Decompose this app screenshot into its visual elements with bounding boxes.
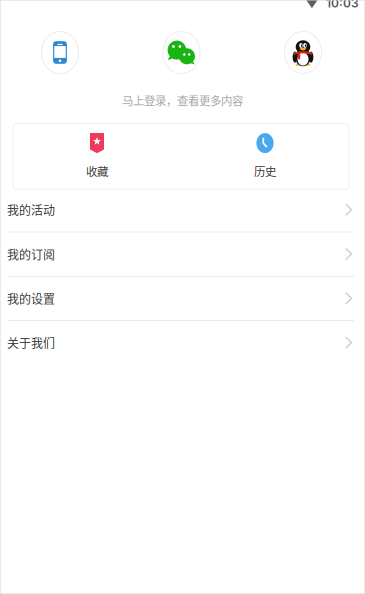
button[interactable]: 手机登录 (41, 31, 79, 74)
button[interactable]: 我的订阅 (0, 232, 365, 277)
staticText: 马上登录，查看更多内容 (122, 92, 243, 109)
button[interactable]: QQ登录 (284, 31, 322, 74)
staticText: 历史 (254, 163, 276, 179)
staticText: 我的订阅 (7, 245, 55, 263)
button[interactable]: 我的活动 (0, 188, 365, 232)
button[interactable]: 微信登录 (162, 31, 200, 74)
button[interactable]: 关于我们 (0, 321, 365, 365)
staticText: 10:03 (326, 0, 359, 10)
button[interactable]: 我的设置 (0, 277, 365, 321)
staticText: 收藏 (86, 163, 108, 179)
button[interactable]: 马上登录，查看更多内容 (122, 74, 243, 111)
button[interactable]: 历史 (181, 124, 349, 189)
staticText: 关于我们 (7, 334, 55, 351)
button[interactable]: 收藏 (13, 124, 181, 189)
staticText: 我的活动 (7, 201, 55, 219)
staticText: 我的设置 (7, 290, 55, 307)
